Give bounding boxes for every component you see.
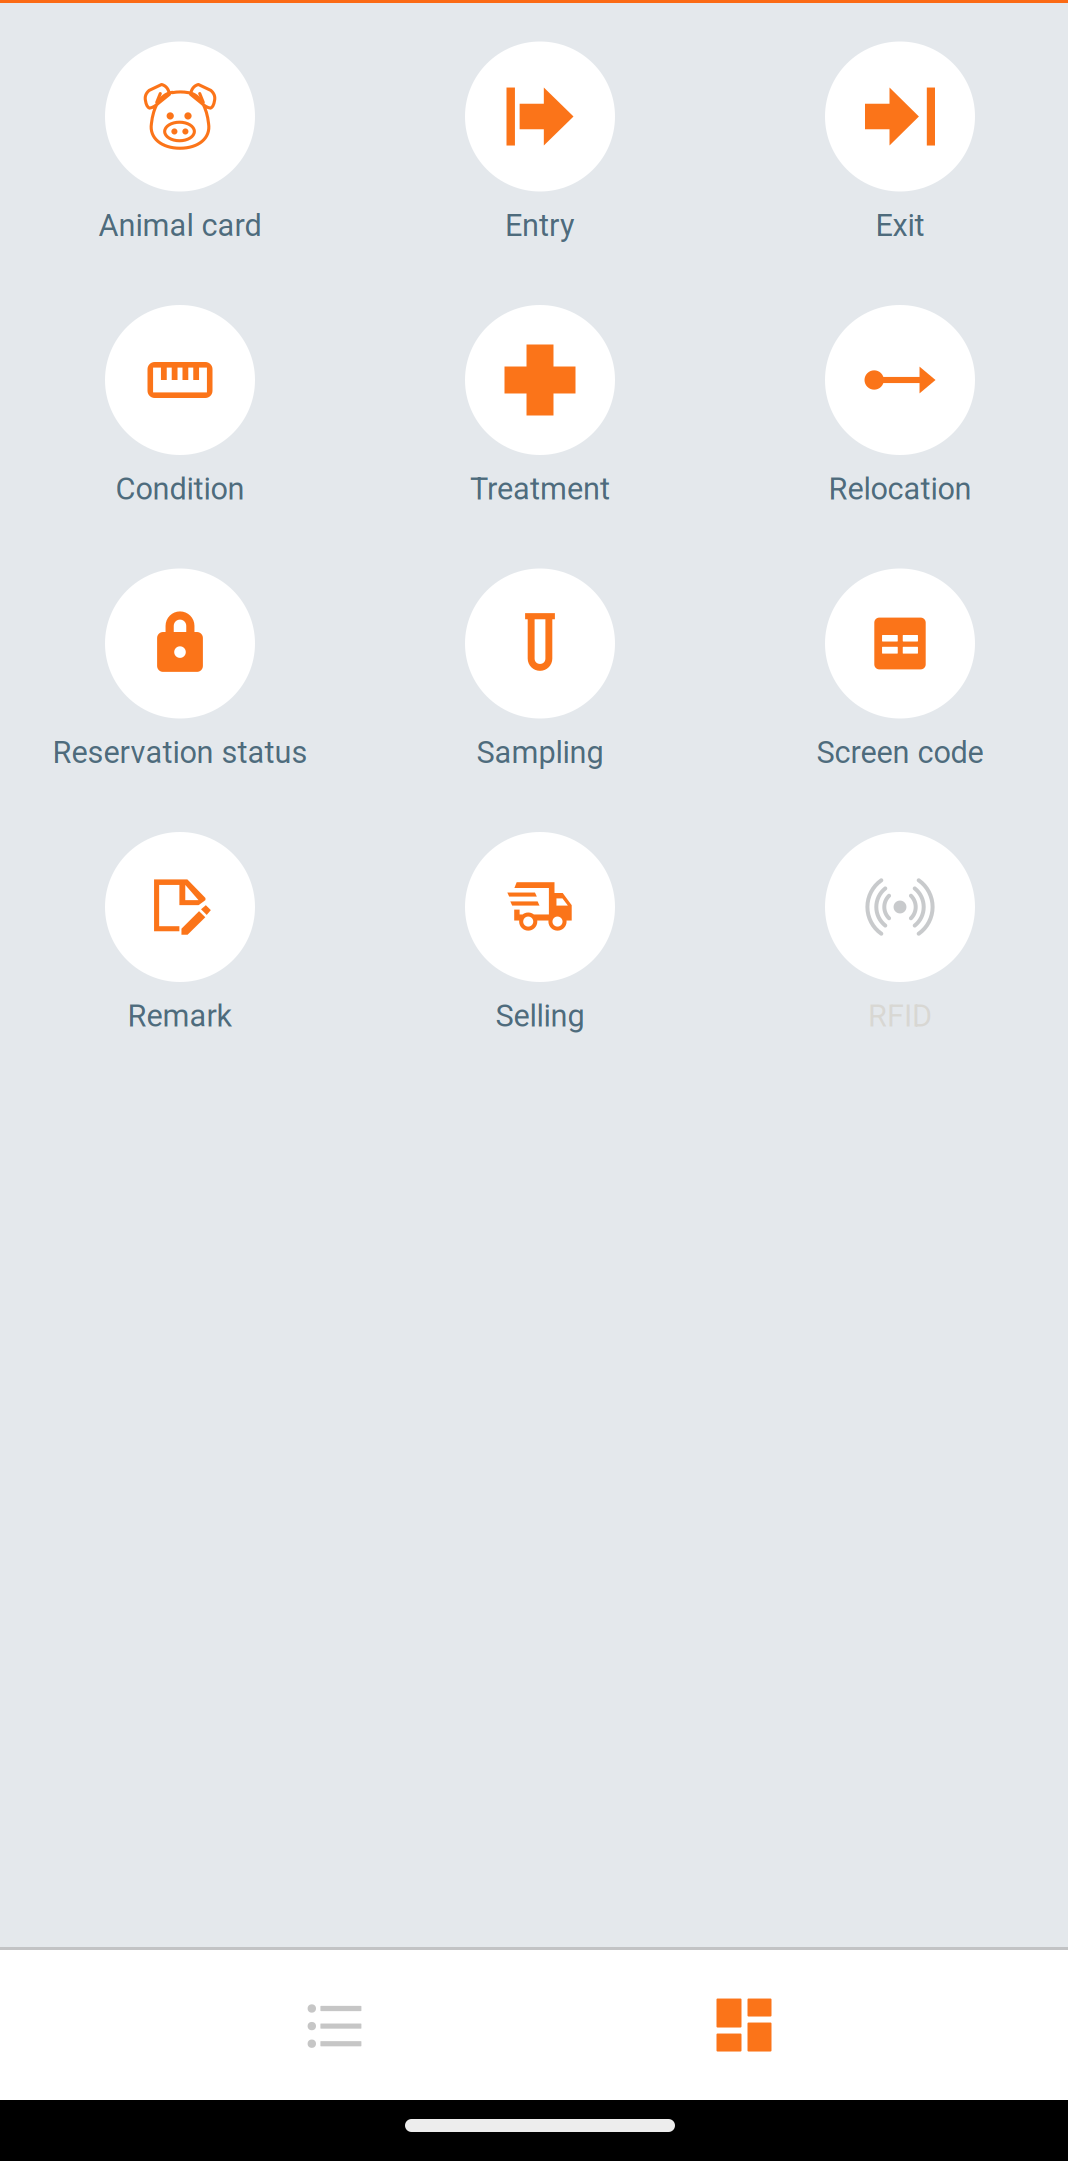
staticText: Condition (115, 471, 244, 507)
button[interactable]: List view (184, 1951, 484, 2101)
button[interactable]: Reservation status (5, 568, 355, 774)
button[interactable]: Screen code (725, 568, 1068, 774)
staticText: Screen code (816, 734, 983, 770)
staticText: Treatment (470, 471, 610, 507)
button[interactable]: Grid view (594, 1950, 894, 2100)
button[interactable]: Treatment (365, 305, 715, 511)
staticText: Entry (505, 207, 575, 243)
button[interactable]: Exit (725, 41, 1068, 247)
button[interactable]: Selling (365, 832, 715, 1038)
staticText: Animal card (98, 207, 261, 243)
staticText: Reservation status (52, 734, 307, 770)
staticText: Exit (875, 207, 924, 243)
staticText: RFID (868, 998, 932, 1034)
button[interactable]: Relocation (725, 305, 1068, 511)
button[interactable]: Remark (5, 832, 355, 1038)
staticText: Sampling (476, 734, 603, 770)
staticText: Remark (127, 998, 232, 1034)
button[interactable]: Sampling (365, 568, 715, 774)
button[interactable]: Entry (365, 41, 715, 247)
button[interactable]: RFID (725, 832, 1068, 1038)
staticText: Relocation (828, 471, 971, 507)
button[interactable]: Condition (5, 305, 355, 511)
button[interactable]: Animal card (5, 41, 355, 247)
staticText: Selling (495, 998, 584, 1034)
